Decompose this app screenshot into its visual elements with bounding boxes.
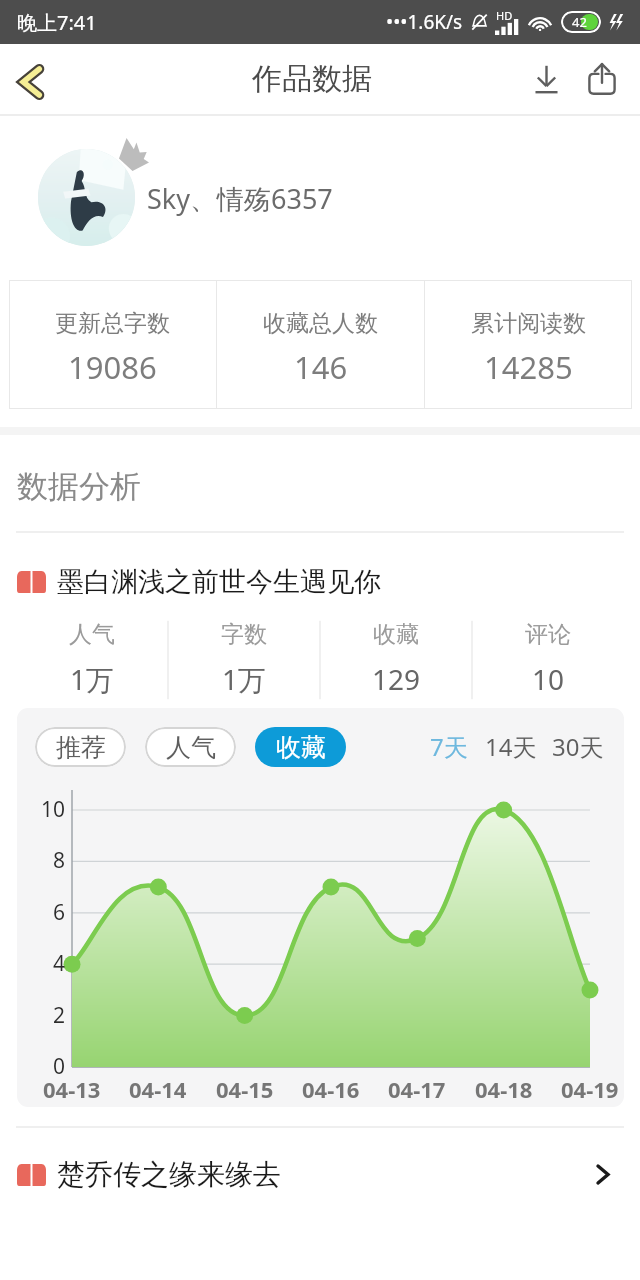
staticText: 14天: [485, 730, 537, 763]
staticText: 评论: [525, 620, 571, 649]
staticText: 收藏总人数: [263, 309, 378, 338]
button[interactable]: 累计阅读数: [425, 280, 632, 409]
staticText: 更新总字数: [55, 309, 170, 338]
button[interactable]: 更新总字数: [9, 280, 216, 409]
staticText: 作品数据: [252, 60, 372, 98]
staticText: 楚乔传之缘来缘去: [57, 1157, 281, 1192]
staticText: 人气: [166, 732, 216, 763]
staticText: 04-13: [43, 1074, 101, 1104]
staticText: 4: [53, 949, 66, 978]
staticText: 04-16: [302, 1074, 360, 1104]
staticText: 10: [41, 795, 66, 824]
staticText: 0: [53, 1052, 66, 1081]
staticText: 人气: [69, 620, 115, 649]
staticText: 晚上7:41: [17, 9, 97, 36]
button[interactable]: 人气: [145, 727, 236, 767]
button[interactable]: 楚乔传之缘来缘去: [17, 1128, 620, 1220]
button[interactable]: Open: [586, 1154, 620, 1194]
staticText: 累计阅读数: [471, 309, 586, 338]
staticText: 42: [572, 13, 587, 31]
staticText: 字数: [221, 620, 267, 649]
staticText: 04-19: [561, 1074, 619, 1104]
button[interactable]: 30天: [550, 730, 606, 763]
button[interactable]: 评论: [472, 612, 624, 708]
staticText: 收藏: [276, 732, 326, 763]
staticText: 8: [53, 846, 66, 875]
staticText: 6: [53, 898, 66, 927]
button[interactable]: 墨白渊浅之前世今生遇见你: [17, 551, 640, 612]
staticText: 04-15: [216, 1074, 274, 1104]
staticText: HD: [496, 8, 513, 23]
button[interactable]: Download: [518, 44, 574, 114]
button[interactable]: 人气: [16, 612, 168, 708]
staticText: 146: [294, 346, 348, 388]
button[interactable]: 收藏: [320, 612, 472, 708]
staticText: 14285: [484, 346, 573, 388]
staticText: 2: [53, 1001, 66, 1030]
staticText: 04-14: [129, 1074, 187, 1104]
staticText: 推荐: [56, 732, 106, 763]
staticText: 04-18: [475, 1074, 533, 1104]
staticText: 1万: [222, 660, 267, 698]
staticText: 数据分析: [17, 467, 141, 506]
button[interactable]: 收藏总人数: [217, 280, 424, 409]
staticText: 墨白渊浅之前世今生遇见你: [57, 565, 381, 599]
staticText: 04-17: [388, 1074, 446, 1104]
staticText: 10: [532, 660, 565, 698]
staticText: •••1.6K/s: [386, 9, 463, 35]
staticText: Sky、情殇6357: [147, 180, 333, 217]
staticText: 129: [372, 660, 421, 698]
staticText: 7天: [430, 730, 468, 763]
staticText: 1万: [70, 660, 115, 698]
button[interactable]: Back: [0, 44, 62, 114]
button[interactable]: 7天: [428, 730, 470, 763]
staticText: 收藏: [373, 620, 419, 649]
button[interactable]: 收藏: [255, 727, 346, 767]
button[interactable]: Share: [574, 44, 630, 114]
button[interactable]: 推荐: [35, 727, 126, 767]
staticText: 19086: [68, 346, 157, 388]
button[interactable]: 字数: [168, 612, 320, 708]
button[interactable]: 14天: [483, 730, 539, 763]
staticText: 30天: [552, 730, 604, 763]
